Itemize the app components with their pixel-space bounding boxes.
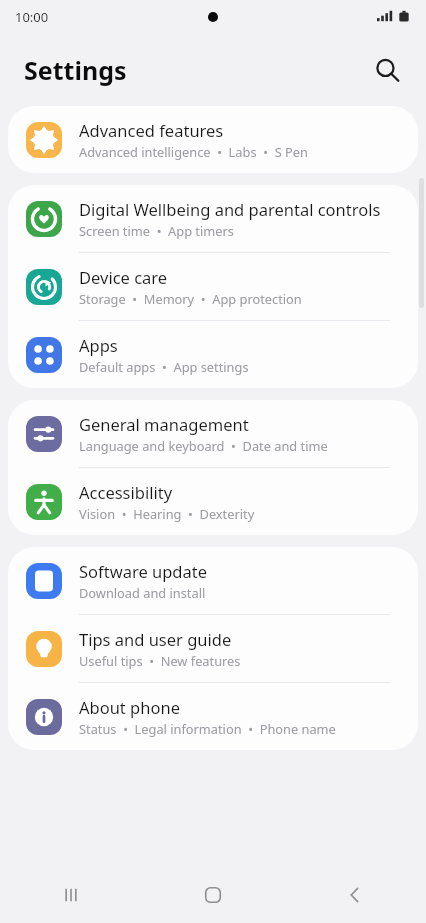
staticText: Language and keyboard • Date and time [79, 437, 328, 454]
button[interactable]: General management [8, 400, 418, 467]
button[interactable]: Tips and user guide [8, 615, 418, 682]
staticText: Storage • Memory • App protection [79, 290, 302, 307]
staticText: Software update [79, 560, 207, 582]
staticText: Advanced features [79, 119, 224, 141]
staticText: Vision • Hearing • Dexterity [79, 505, 255, 522]
button[interactable]: Software update [8, 547, 418, 614]
button[interactable]: Digital Wellbeing and parental controls [8, 185, 418, 252]
staticText: Screen time • App timers [79, 222, 234, 239]
button[interactable]: Advanced features [8, 106, 418, 173]
staticText: Settings [24, 53, 127, 87]
button[interactable]: Accessibility [8, 468, 418, 535]
button[interactable]: About phone [8, 683, 418, 750]
staticText: Digital Wellbeing and parental controls [79, 198, 381, 220]
staticText: Advanced intelligence • Labs • S Pen [79, 143, 308, 160]
staticText: Status • Legal information • Phone name [79, 720, 336, 737]
button[interactable]: Device care [8, 253, 418, 320]
staticText: Apps [79, 334, 118, 356]
staticText: Download and install [79, 584, 206, 601]
button[interactable]: Recents [0, 867, 142, 923]
staticText: About phone [79, 696, 180, 718]
staticText: Tips and user guide [79, 628, 232, 650]
staticText: Useful tips • New features [79, 652, 241, 669]
button[interactable]: Search [370, 53, 404, 87]
staticText: General management [79, 413, 249, 435]
button[interactable]: Back [284, 867, 426, 923]
staticText: 10:00 [15, 8, 49, 26]
button[interactable]: Home [142, 867, 284, 923]
button[interactable]: Apps [8, 321, 418, 388]
staticText: Accessibility [79, 481, 173, 503]
staticText: Default apps • App settings [79, 358, 249, 375]
staticText: Device care [79, 266, 168, 288]
